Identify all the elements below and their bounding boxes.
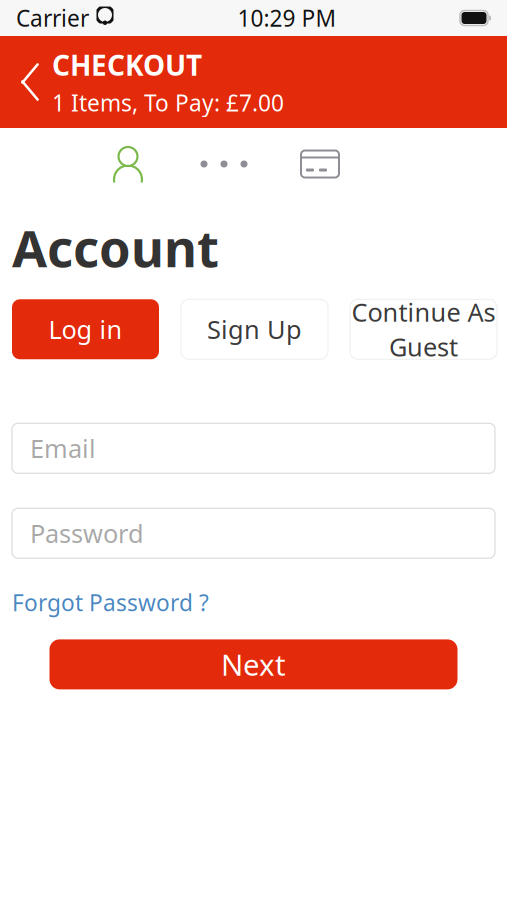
button[interactable]: Next	[49, 639, 457, 689]
button[interactable]: Sign Up	[181, 299, 328, 359]
button[interactable]: Continue As	[350, 299, 497, 359]
staticText: Sign Up	[207, 312, 302, 346]
staticText: Forgot Password ?	[12, 587, 209, 617]
staticText: Log in	[48, 312, 122, 346]
staticText: Account	[12, 214, 219, 281]
button[interactable]: Log in	[12, 299, 159, 359]
staticText: Password	[30, 516, 144, 550]
staticText: Email	[30, 431, 96, 465]
staticText: 10:29 PM	[237, 3, 336, 33]
staticText: CHECKOUT	[52, 46, 202, 84]
staticText: Continue As	[351, 295, 495, 329]
staticText: Next	[221, 645, 286, 684]
staticText: Carrier	[16, 3, 89, 33]
button[interactable]: Back	[8, 52, 52, 112]
staticText: 1 Items, To Pay: £7.00	[52, 87, 284, 118]
staticText: Guest	[389, 330, 458, 363]
button[interactable]: Forgot Password ?	[12, 587, 209, 617]
